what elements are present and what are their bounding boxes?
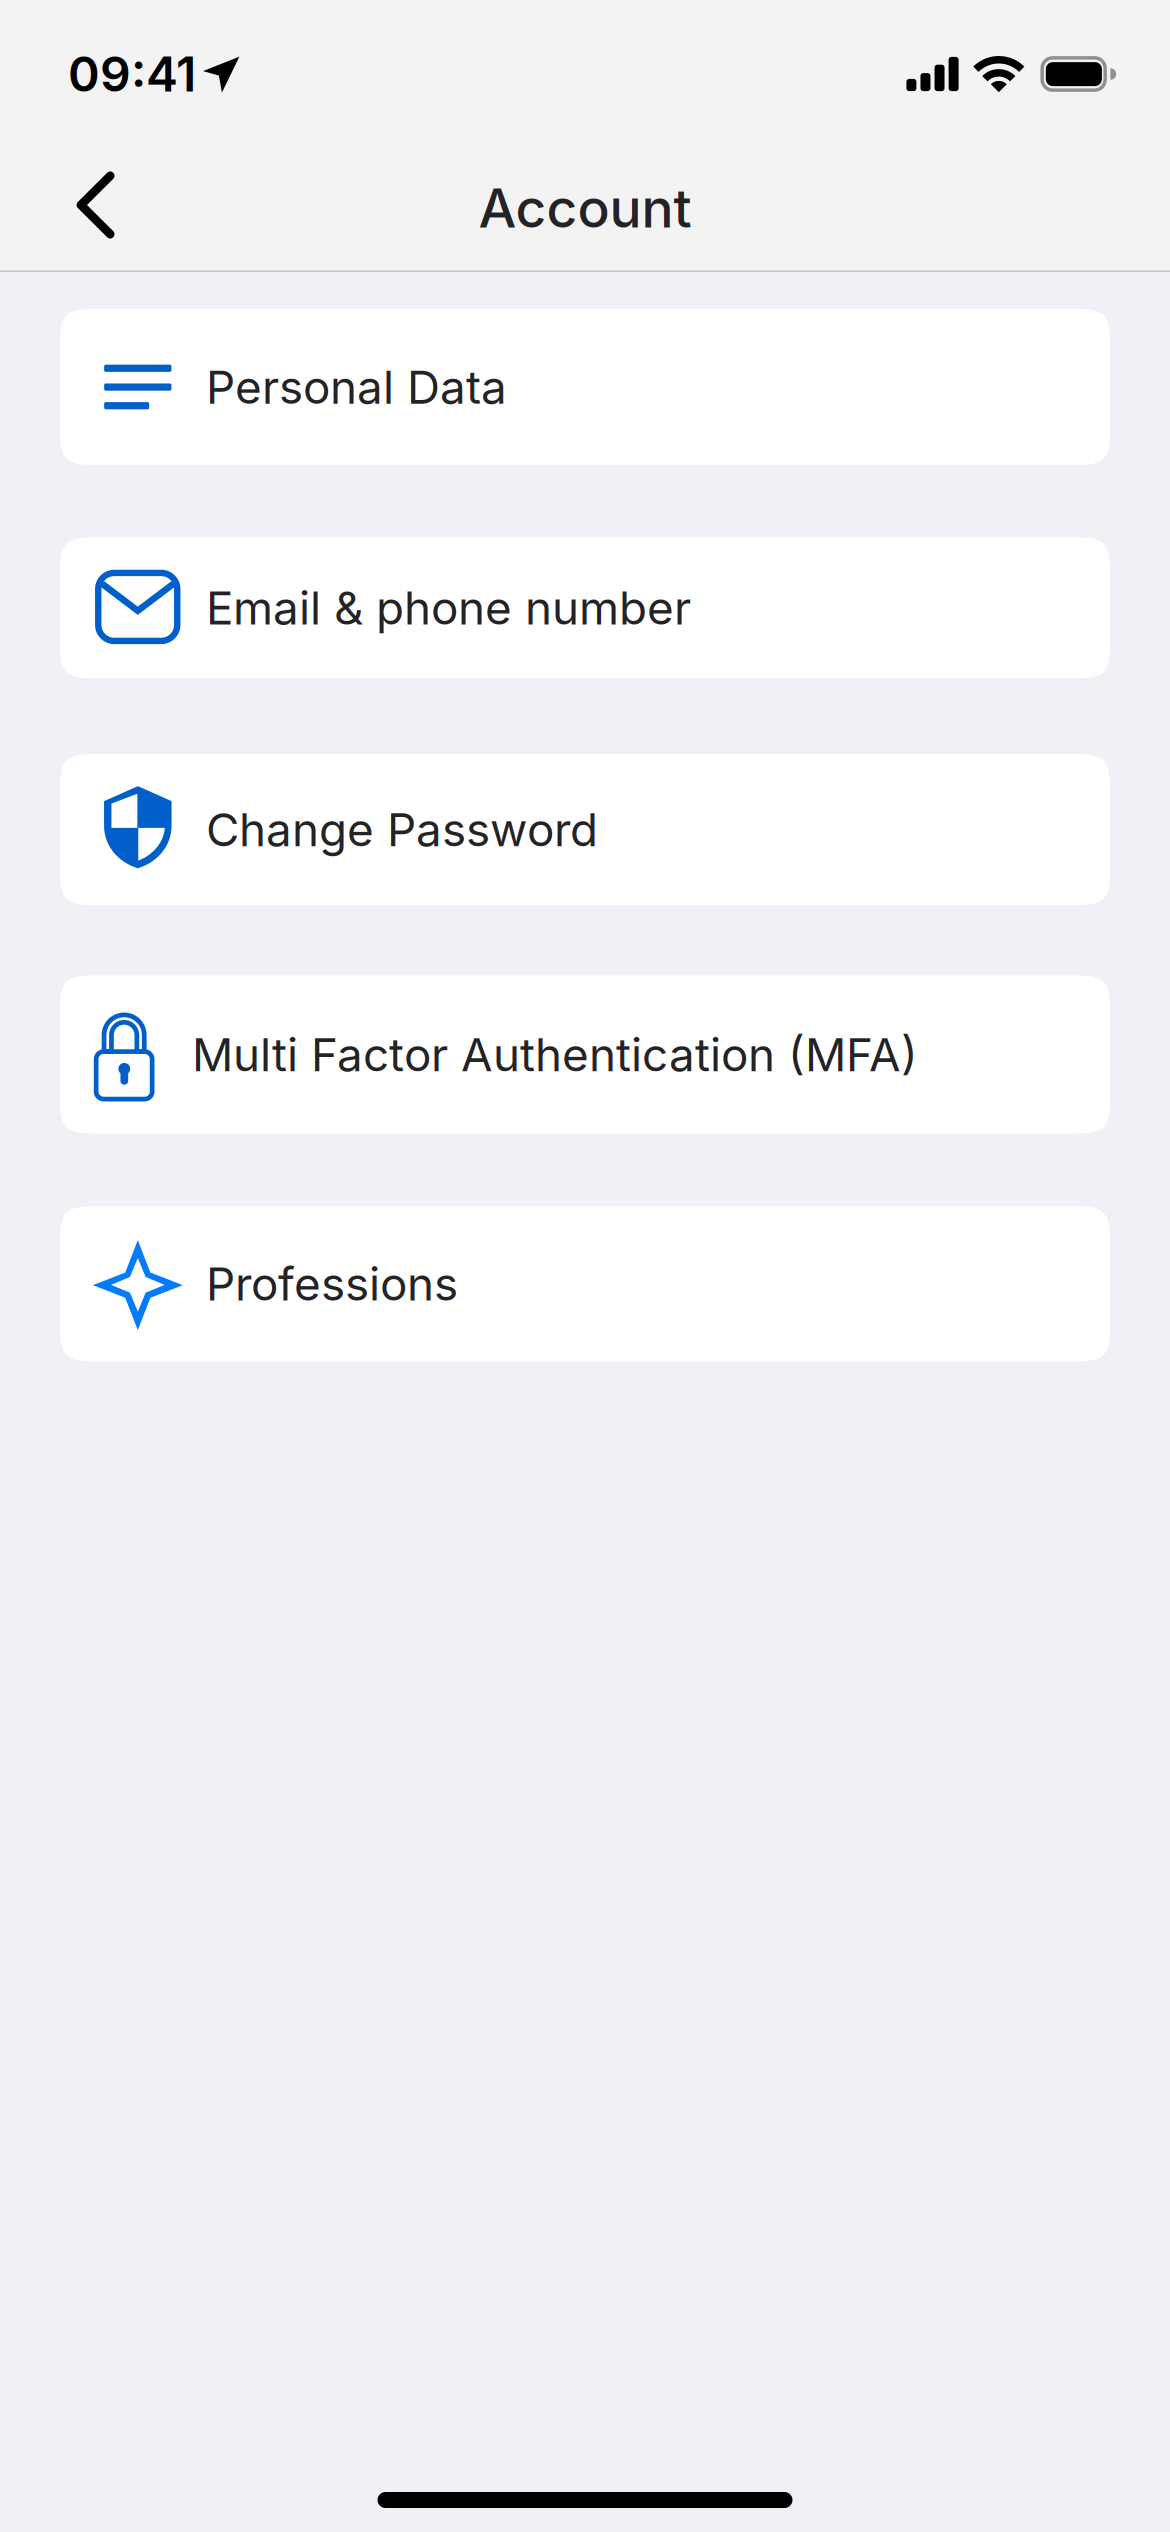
staticText: Change Password [206, 802, 598, 857]
button[interactable]: Multi Factor Authentication (MFA) [60, 975, 1110, 1133]
button[interactable]: Personal Data [60, 309, 1110, 465]
staticText: Multi Factor Authentication (MFA) [192, 1027, 918, 1082]
button[interactable]: Change Password [60, 754, 1110, 905]
button[interactable]: Email & phone number [60, 537, 1110, 678]
staticText: Personal Data [206, 359, 507, 415]
staticText: Professions [206, 1256, 458, 1311]
staticText: Account [478, 176, 691, 240]
staticText: 09:41 [68, 45, 196, 103]
button[interactable]: Back [0, 144, 162, 266]
staticText: Email & phone number [206, 580, 691, 635]
button[interactable]: Professions [60, 1206, 1110, 1361]
